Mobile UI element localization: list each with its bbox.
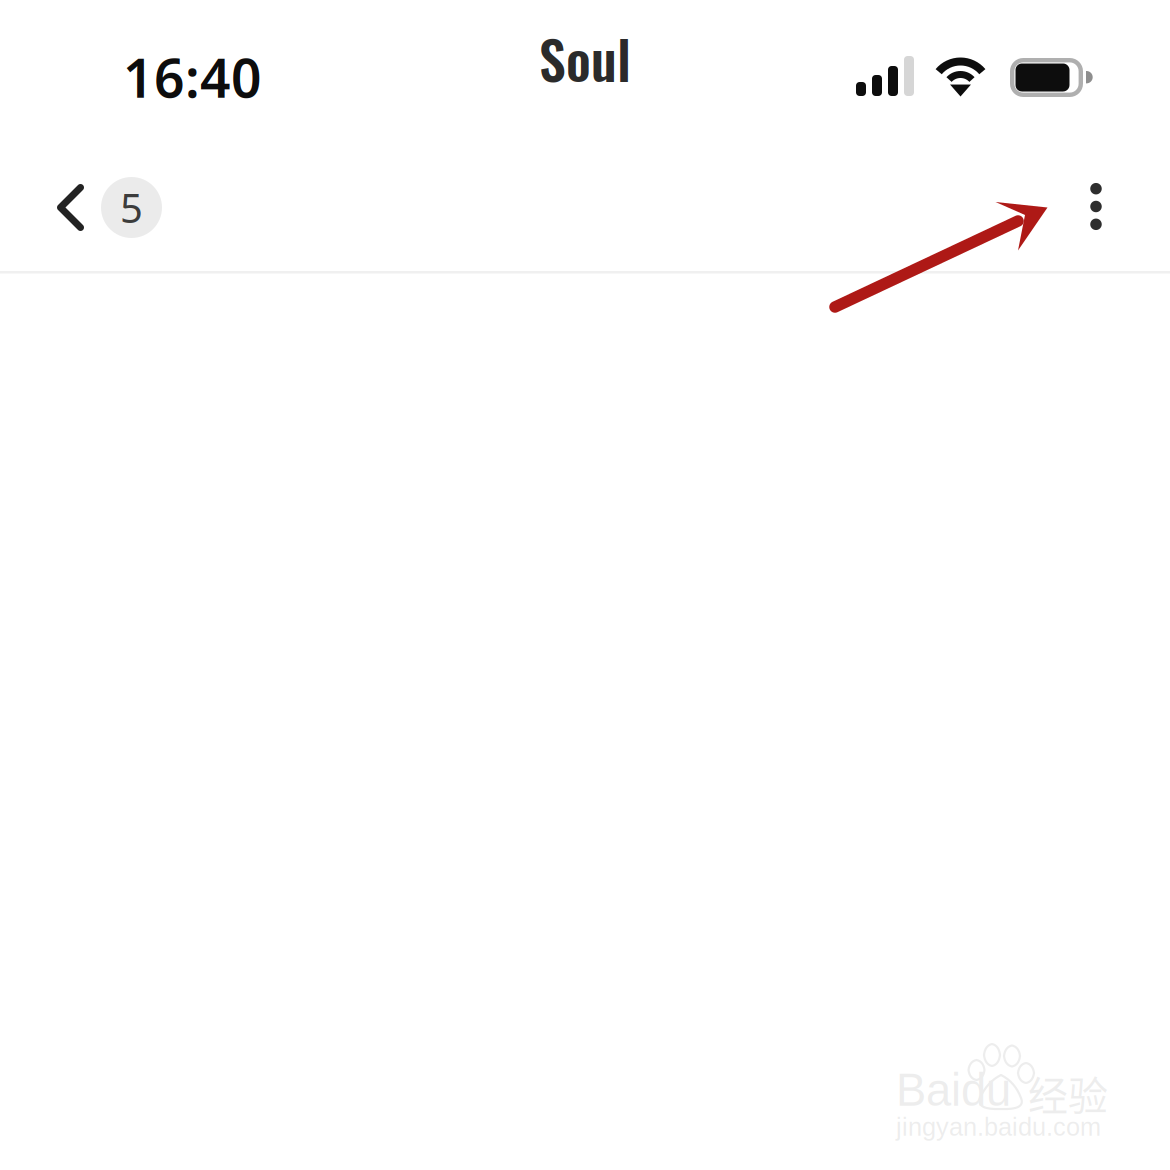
staticText: 16:40 [123,42,262,112]
staticText: 5 [120,181,143,234]
button[interactable]: 5 [101,169,162,254]
staticText: 经验 [1028,1064,1108,1122]
staticText: Soul [539,18,631,97]
staticText: jingyan.baidu.com [896,1113,1101,1141]
button[interactable]: Back [0,169,101,254]
button[interactable]: More options [1058,157,1134,265]
staticText: Baidu [896,1065,1011,1115]
